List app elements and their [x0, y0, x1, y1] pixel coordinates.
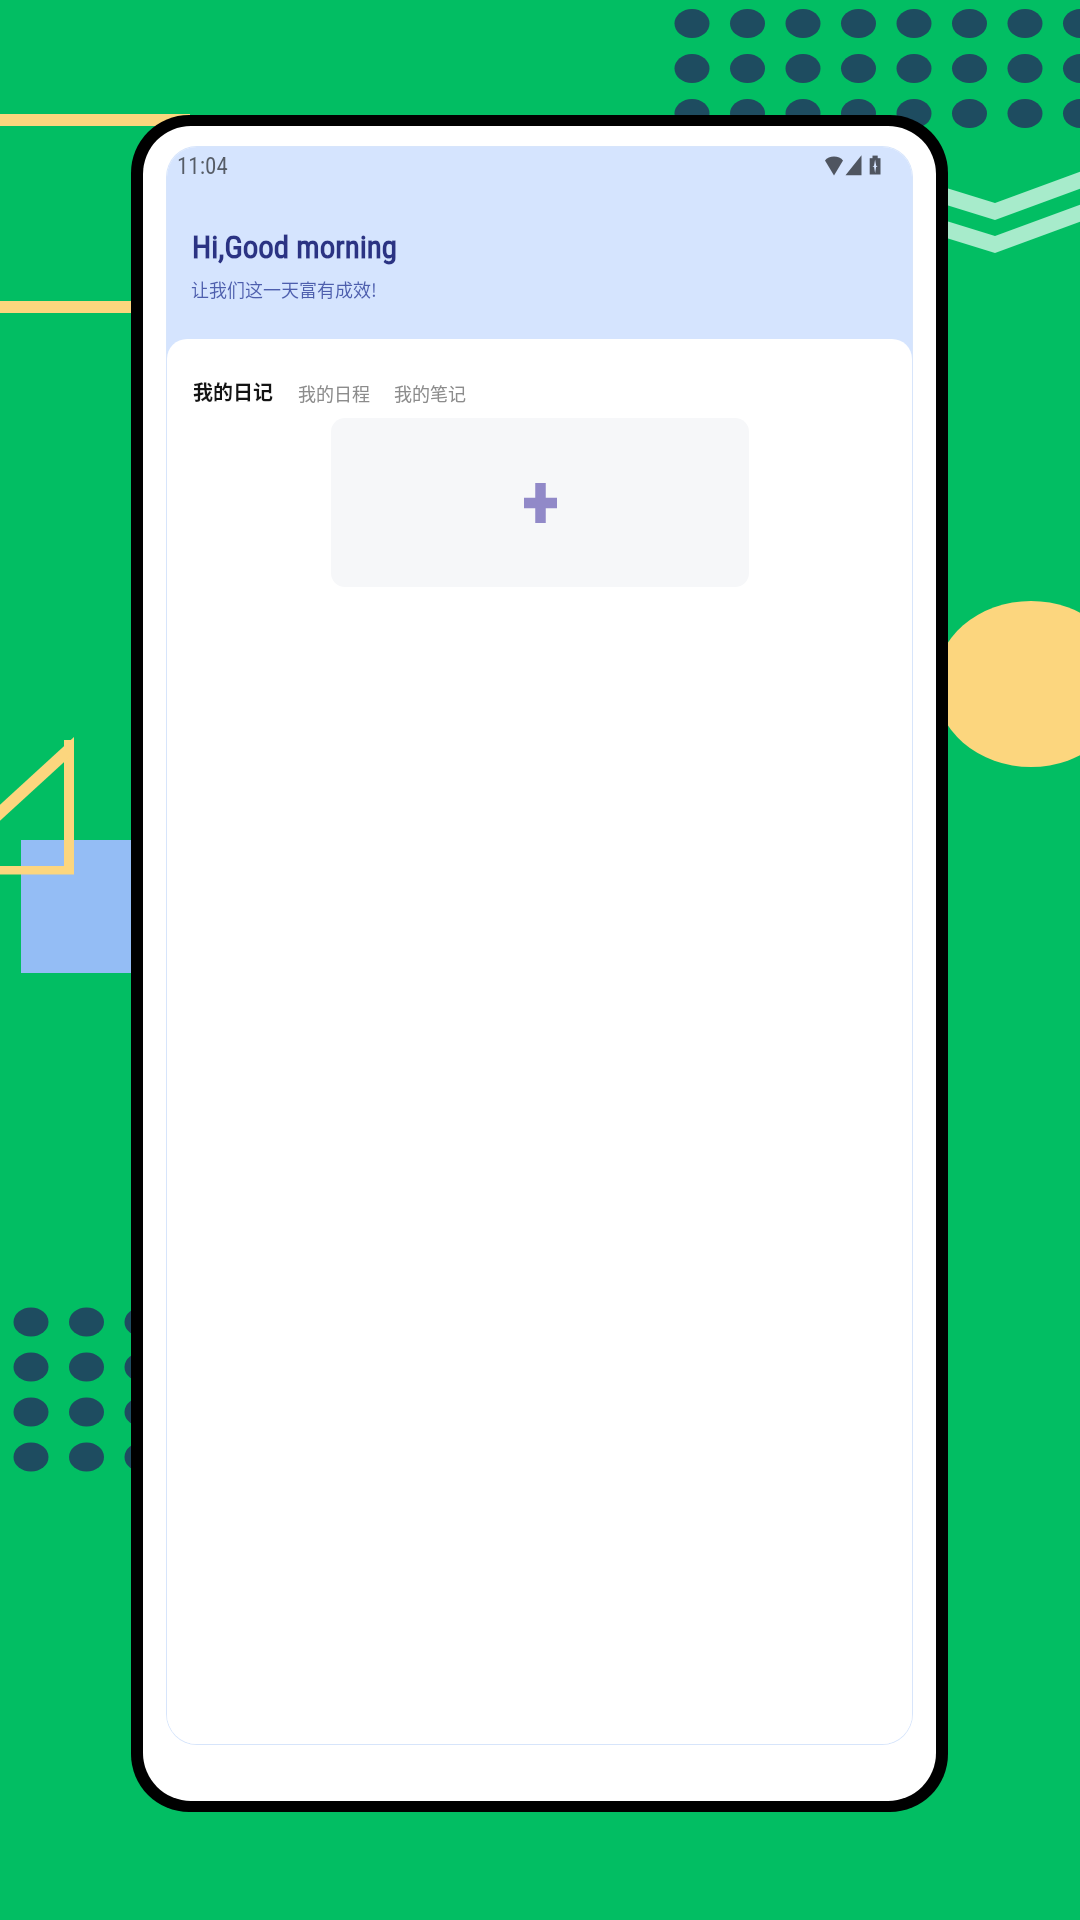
button[interactable]: 我的日程: [298, 380, 370, 406]
button[interactable]: 我的日记: [193, 377, 273, 406]
staticText: 11:04: [177, 153, 228, 180]
staticText: 我的日程: [298, 380, 370, 406]
staticText: Hi,Good morning: [192, 229, 398, 265]
staticText: 我的日记: [193, 377, 273, 406]
staticText: 我的笔记: [394, 380, 466, 406]
button[interactable]: Add new diary entry: [331, 418, 749, 587]
staticText: 让我们这一天富有成效!: [191, 276, 377, 302]
button[interactable]: 我的笔记: [394, 380, 466, 406]
